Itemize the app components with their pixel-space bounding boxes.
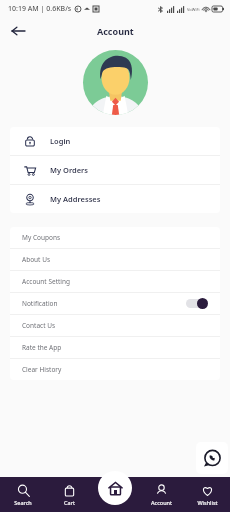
staticText: Search [14,499,32,506]
button[interactable]: About Us [10,249,220,270]
button[interactable]: Back [6,19,30,43]
button[interactable]: Home [98,471,132,505]
staticText: Account Setting [22,277,71,286]
staticText: Rate the App [22,343,62,352]
staticText: About Us [22,255,51,264]
button[interactable]: Rate the App [10,337,220,358]
button[interactable]: Wishlist [184,477,230,512]
staticText: My Addresses [50,194,101,204]
staticText: Account [97,25,134,37]
staticText: Account [151,499,172,506]
staticText: My Coupons [22,233,61,242]
button[interactable]: Notification [10,293,220,314]
button[interactable]: Search [0,477,46,512]
button[interactable]: Login [10,127,220,155]
button[interactable]: WhatsApp chat [196,442,228,474]
button[interactable]: Contact Us [10,315,220,336]
staticText: My Orders [50,165,89,175]
button[interactable]: Notification toggle [186,298,208,309]
staticText: VoWiFi [187,7,200,12]
button[interactable]: Account [138,477,184,512]
button[interactable]: Account Setting [10,271,220,292]
button[interactable]: Clear History [10,359,220,380]
staticText: Cart [64,499,75,506]
staticText: 10:19 AM | 0.6KB/s [8,4,72,14]
staticText: Clear History [22,365,62,374]
staticText: Wishlist [197,499,218,506]
button[interactable]: Cart [46,477,92,512]
button[interactable]: My Coupons [10,227,220,248]
staticText: Contact Us [22,321,56,330]
button[interactable]: My Orders [10,156,220,184]
button[interactable]: My Addresses [10,185,220,213]
staticText: Notification [22,299,58,308]
staticText: Login [50,136,71,146]
